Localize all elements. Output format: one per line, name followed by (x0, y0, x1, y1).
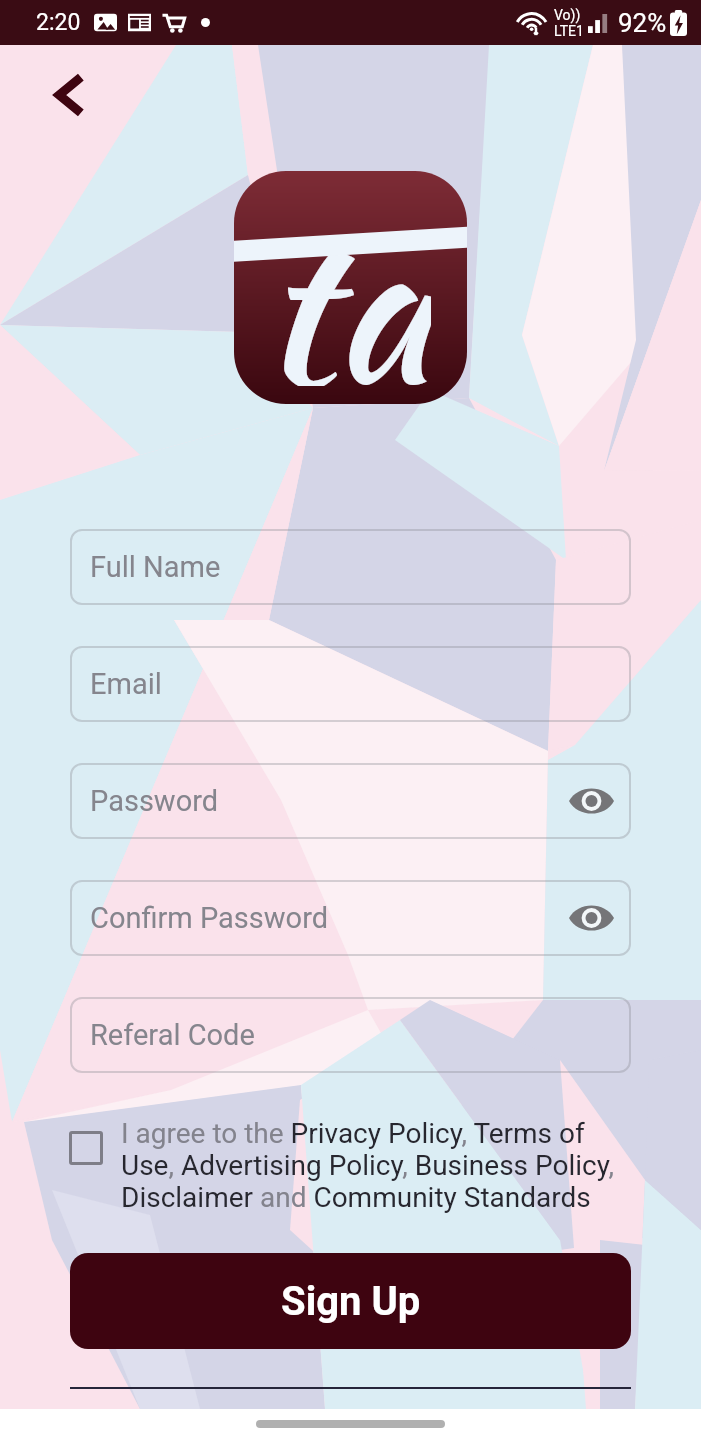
button[interactable]: Full Name (70, 529, 631, 605)
button[interactable]: Sign Up (70, 1253, 631, 1349)
staticText: ta (258, 171, 431, 386)
staticText: Confirm Password (90, 901, 329, 935)
staticText: Full Name (90, 550, 221, 584)
button[interactable]: Email (70, 646, 631, 722)
staticText: Vo)) (554, 7, 581, 23)
staticText: Password (90, 784, 219, 818)
staticText: 2:20 (36, 9, 81, 36)
button[interactable]: Show password (567, 894, 615, 942)
staticText: Referal Code (90, 1018, 255, 1052)
button[interactable]: Agree to terms checkbox (69, 1131, 103, 1165)
button[interactable]: Referal Code (70, 997, 631, 1073)
staticText: 92% (618, 8, 667, 38)
button[interactable]: Confirm Password (70, 880, 631, 956)
button[interactable]: Show password (567, 777, 615, 825)
button[interactable]: App logo (234, 171, 467, 404)
button[interactable]: Back (42, 69, 94, 121)
button[interactable]: I agree to the Privacy Policy, Terms of … (121, 1117, 643, 1214)
button[interactable]: Password (70, 763, 631, 839)
staticText: LTE1 (554, 23, 584, 39)
staticText: Email (90, 667, 162, 701)
staticText: Sign Up (281, 1278, 421, 1325)
